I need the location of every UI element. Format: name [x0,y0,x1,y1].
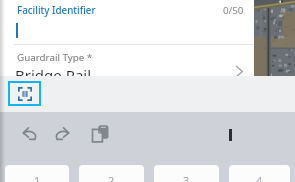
staticText: 3 [183,173,190,182]
staticText: Guardrail Type * [17,51,93,64]
staticText: Facility Identifier [17,4,96,17]
button[interactable]: 3 [154,165,219,182]
button[interactable]: Scan barcode [10,83,39,104]
staticText: 0/50 [223,4,244,17]
button[interactable]: Undo [20,124,40,144]
button[interactable]: Paste [90,123,111,144]
button[interactable]: Redo [52,124,72,144]
button[interactable]: 4 [229,165,290,182]
staticText: 4 [256,173,263,182]
staticText: 1 [34,173,41,182]
staticText: Bridge Rail [15,65,92,85]
staticText: 2 [108,173,115,182]
button[interactable]: 1 [5,165,69,182]
button[interactable]: 2 [79,165,144,182]
